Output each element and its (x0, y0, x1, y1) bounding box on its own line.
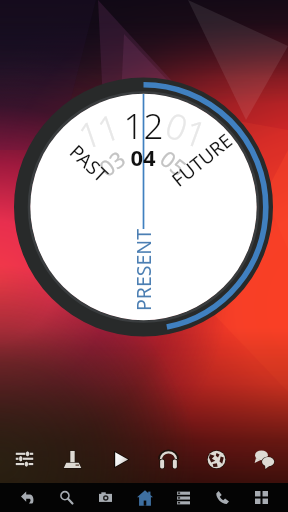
button[interactable]: Browser (192, 435, 240, 483)
button[interactable]: Search (47, 483, 86, 512)
button[interactable]: Tune (0, 435, 48, 483)
button[interactable]: Music (144, 435, 192, 483)
button[interactable]: Camera (86, 483, 125, 512)
button[interactable]: Apps (242, 483, 281, 512)
button[interactable]: Back (8, 483, 47, 512)
button[interactable]: Downloads (48, 435, 96, 483)
button[interactable]: Phone (203, 483, 242, 512)
button[interactable]: Play Store (96, 435, 144, 483)
button[interactable]: Recents (164, 483, 203, 512)
button[interactable]: Messages (240, 435, 288, 483)
button[interactable]: Home (125, 483, 164, 512)
